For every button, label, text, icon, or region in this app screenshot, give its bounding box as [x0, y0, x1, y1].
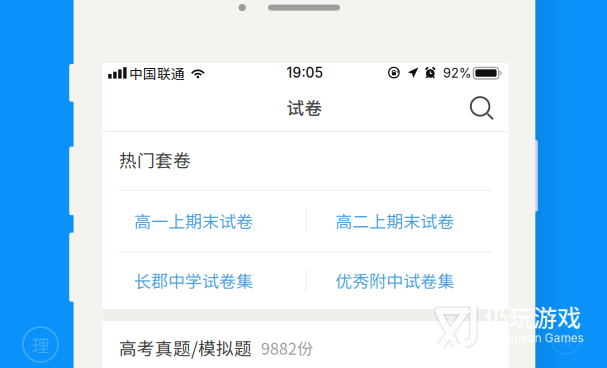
- button[interactable]: 高二上期末试卷: [305, 190, 508, 252]
- button[interactable]: 长郡中学试卷集: [102, 252, 305, 309]
- staticText: 中国联通: [129, 63, 185, 83]
- staticText: 文: [559, 330, 573, 350]
- staticText: 高考真题/模拟题: [119, 335, 252, 360]
- staticText: 仍玩游戏: [485, 299, 581, 334]
- staticText: 优秀附中试卷集: [335, 268, 454, 293]
- button[interactable]: 高一上期末试卷: [102, 190, 305, 252]
- staticText: 高一上期末试卷: [134, 208, 253, 233]
- staticText: 92%: [443, 65, 472, 81]
- button[interactable]: 高考真题/模拟题: [102, 321, 508, 368]
- staticText: 9882份: [261, 336, 313, 359]
- staticText: 长郡中学试卷集: [134, 268, 253, 293]
- staticText: 试卷: [286, 95, 322, 120]
- button[interactable]: 搜索: [460, 87, 504, 131]
- staticText: 理: [32, 333, 49, 357]
- staticText: 高二上期末试卷: [335, 208, 454, 233]
- button[interactable]: 优秀附中试卷集: [305, 252, 508, 309]
- staticText: 热门套卷: [119, 147, 191, 172]
- staticText: 19:05: [286, 64, 323, 81]
- staticText: Rengwan Games: [489, 331, 583, 345]
